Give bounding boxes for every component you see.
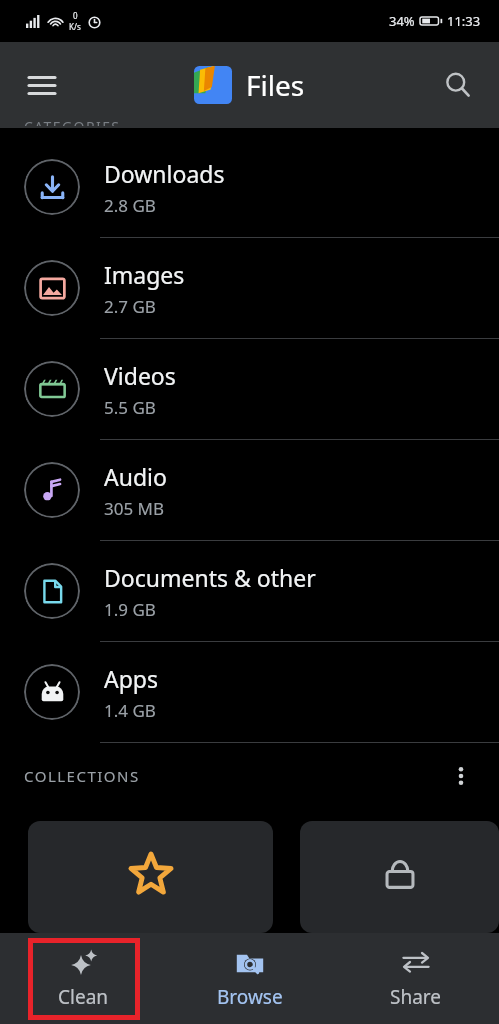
staticText: 5.5 GB <box>104 396 156 419</box>
staticText: 1.9 GB <box>104 598 156 621</box>
staticText: Apps <box>104 663 159 694</box>
staticText: 34% <box>389 12 415 30</box>
staticText: Videos <box>104 360 176 391</box>
staticText: Clean <box>58 984 109 1010</box>
button[interactable]: Images <box>0 238 499 339</box>
button[interactable]: Audio <box>0 440 499 541</box>
button[interactable]: Clean <box>40 941 127 1016</box>
staticText: COLLECTIONS <box>24 766 140 786</box>
staticText: CATEGORIES <box>24 117 121 126</box>
staticText: 2.8 GB <box>104 194 156 217</box>
button[interactable]: Browse <box>199 941 301 1016</box>
staticText: Browse <box>217 984 283 1010</box>
staticText: Audio <box>104 461 167 492</box>
staticText: Files <box>246 66 305 104</box>
staticText: 305 MB <box>104 497 165 520</box>
staticText: Share <box>390 984 442 1010</box>
button[interactable]: Share <box>372 941 460 1016</box>
button[interactable]: Videos <box>0 339 499 440</box>
button[interactable]: Search <box>431 58 485 112</box>
button[interactable]: Open navigation menu <box>14 57 70 113</box>
staticText: 1.4 GB <box>104 699 156 722</box>
button[interactable]: Apps <box>0 642 499 743</box>
staticText: 11:33 <box>447 12 481 30</box>
staticText: Documents & other <box>104 562 316 593</box>
staticText: Downloads <box>104 158 225 189</box>
staticText: K/s <box>69 21 81 32</box>
button[interactable] <box>28 821 273 933</box>
button[interactable]: More options <box>437 752 485 800</box>
button[interactable]: Documents & other <box>0 541 499 642</box>
staticText: 2.7 GB <box>104 295 156 318</box>
button[interactable]: Downloads <box>0 137 499 238</box>
staticText: Images <box>104 259 185 290</box>
staticText: 0 <box>73 10 78 21</box>
button[interactable] <box>300 821 499 933</box>
